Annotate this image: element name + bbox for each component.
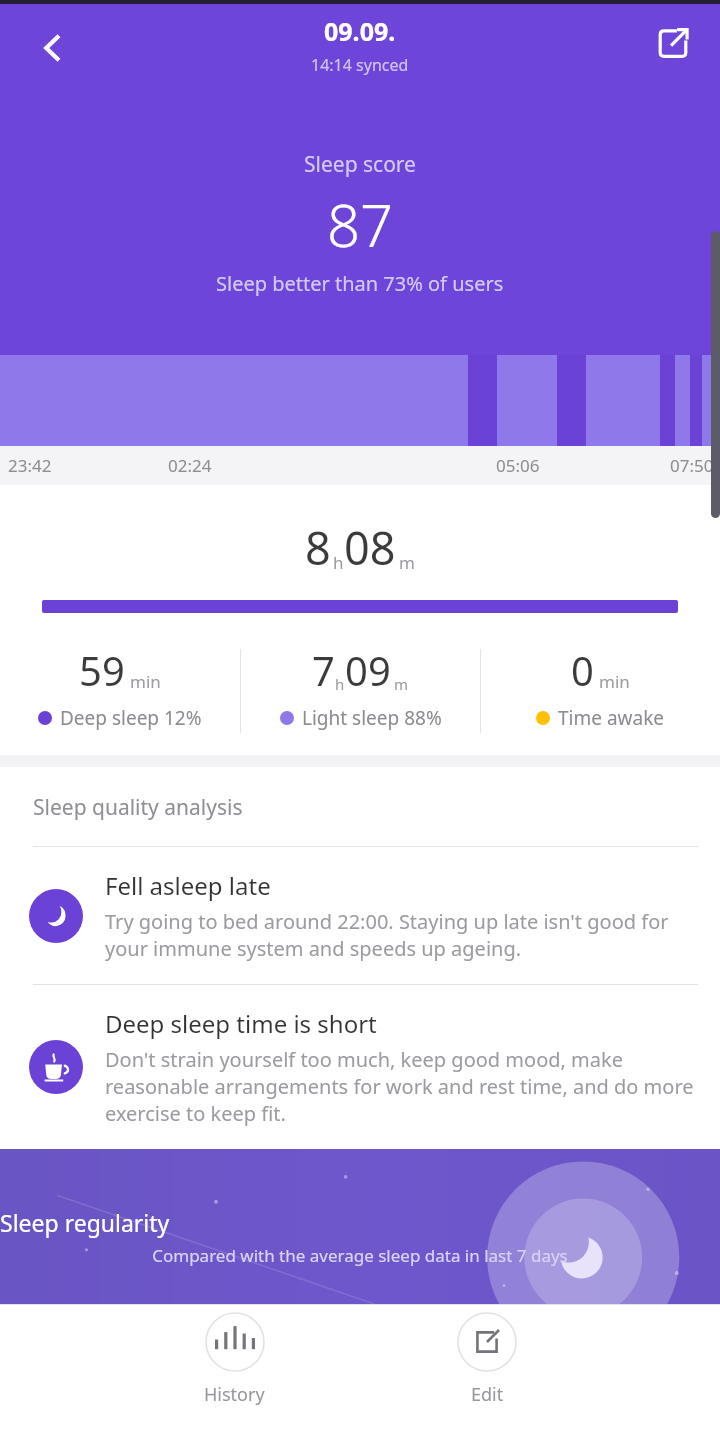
staticText: 59 <box>79 643 125 697</box>
staticText: 07:50 <box>670 454 714 477</box>
staticText: 0 <box>571 643 594 697</box>
staticText: 8 <box>305 517 331 578</box>
staticText: m <box>394 674 409 694</box>
other: Coffee cup <box>29 1040 83 1094</box>
staticText: Deep sleep 12% <box>60 705 202 731</box>
staticText: Fell asleep late <box>105 869 271 902</box>
staticText: Sleep better than 73% of users <box>216 270 504 297</box>
button[interactable]: 0 <box>481 643 720 731</box>
staticText: Time awake <box>558 705 665 731</box>
staticText: Compared with the average sleep data in … <box>0 1244 720 1267</box>
button[interactable]: History <box>194 1308 275 1411</box>
staticText: 08 <box>344 517 396 578</box>
staticText: 05:06 <box>496 454 540 477</box>
button[interactable]: Edit <box>447 1308 527 1411</box>
button[interactable]: Share <box>640 10 706 76</box>
staticText: 09.09. <box>324 14 396 48</box>
staticText: Edit <box>471 1382 504 1407</box>
staticText: h <box>335 674 345 694</box>
button[interactable]: Moon <box>0 847 720 984</box>
staticText: History <box>204 1382 265 1407</box>
button[interactable]: 7 <box>241 643 480 731</box>
other: Moon <box>29 889 83 943</box>
staticText: Sleep regularity <box>0 1207 720 1238</box>
button[interactable]: Coffee cup <box>0 985 720 1149</box>
staticText: Deep sleep time is short <box>105 1007 377 1040</box>
staticText: h <box>333 551 344 574</box>
staticText: m <box>399 551 415 574</box>
staticText: Light sleep 88% <box>302 705 442 731</box>
staticText: 87 <box>327 185 394 264</box>
button[interactable]: Back <box>16 12 88 84</box>
button[interactable]: Sleep regularity <box>0 1149 720 1304</box>
staticText: min <box>599 670 630 693</box>
staticText: 23:42 <box>8 454 52 477</box>
staticText: Don't strain yourself too much, keep goo… <box>105 1046 696 1127</box>
staticText: 7 <box>312 643 335 697</box>
staticText: Sleep score <box>304 150 416 179</box>
button[interactable]: 59 <box>0 643 240 731</box>
staticText: min <box>130 670 161 693</box>
staticText: 09 <box>345 643 391 697</box>
staticText: 14:14 synced <box>311 54 409 76</box>
staticText: Sleep quality analysis <box>33 793 243 822</box>
staticText: 02:24 <box>168 454 212 477</box>
staticText: Try going to bed around 22:00. Staying u… <box>105 908 696 962</box>
